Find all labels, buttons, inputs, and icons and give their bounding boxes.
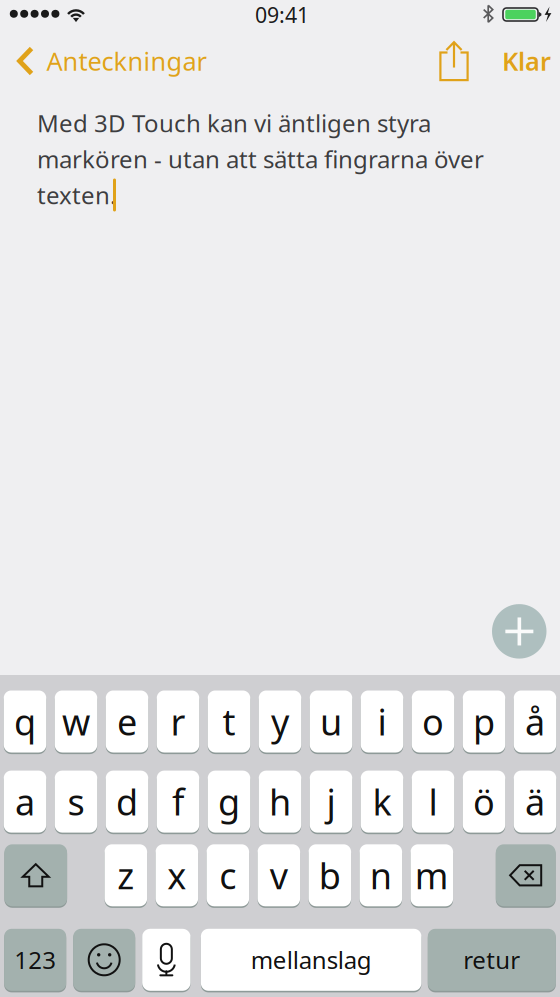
button[interactable]: b	[309, 844, 351, 906]
button[interactable]: retur	[428, 929, 556, 991]
staticText: k	[372, 778, 391, 825]
button[interactable]: mellanslag	[201, 929, 421, 991]
button[interactable]: s	[55, 771, 97, 833]
staticText: h	[269, 778, 291, 825]
staticText: g	[218, 778, 240, 825]
staticText: å	[525, 698, 545, 745]
button[interactable]: p	[463, 690, 505, 752]
button[interactable]: Anteckningar	[16, 27, 216, 83]
staticText: x	[167, 851, 186, 899]
staticText: p	[473, 698, 495, 745]
staticText: z	[117, 851, 134, 899]
button[interactable]: Share	[428, 27, 480, 83]
staticText: s	[67, 778, 84, 825]
button[interactable]: z	[105, 844, 147, 906]
button[interactable]: t	[208, 690, 250, 752]
staticText: b	[319, 851, 341, 899]
button[interactable]: ä	[514, 771, 556, 833]
staticText: o	[422, 698, 444, 745]
button[interactable]: g	[208, 771, 250, 833]
staticText: a	[15, 778, 35, 825]
button[interactable]: y	[259, 690, 301, 752]
staticText: retur	[463, 944, 520, 976]
button[interactable]: l	[412, 771, 454, 833]
staticText: j	[326, 778, 335, 825]
button[interactable]: j	[310, 771, 352, 833]
staticText: q	[14, 698, 36, 745]
button[interactable]: v	[258, 844, 300, 906]
button[interactable]: d	[106, 771, 148, 833]
staticText: u	[320, 698, 342, 745]
button[interactable]: Add	[492, 604, 546, 659]
staticText: Anteckningar	[46, 44, 206, 78]
button[interactable]: i	[361, 690, 403, 752]
staticText: c	[219, 851, 236, 899]
button[interactable]: a	[4, 771, 46, 833]
button[interactable]: x	[156, 844, 198, 906]
button[interactable]: m	[411, 844, 453, 906]
button[interactable]: n	[360, 844, 402, 906]
button[interactable]: k	[361, 771, 403, 833]
staticText: t	[222, 698, 235, 745]
staticText: texten.	[37, 179, 116, 211]
button[interactable]: ö	[463, 771, 505, 833]
staticText: v	[270, 851, 288, 899]
staticText: w	[62, 698, 90, 745]
button[interactable]: u	[310, 690, 352, 752]
button[interactable]: 123	[4, 929, 66, 991]
button[interactable]: r	[157, 690, 199, 752]
button[interactable]: c	[207, 844, 249, 906]
button[interactable]: å	[514, 690, 556, 752]
staticText: y	[271, 698, 289, 745]
staticText: d	[116, 778, 138, 825]
staticText: n	[370, 851, 392, 899]
staticText: l	[428, 778, 437, 825]
staticText: i	[377, 698, 386, 745]
staticText: r	[170, 698, 185, 745]
staticText: markören - utan att sätta fingrarna över	[37, 143, 484, 175]
staticText: m	[415, 851, 449, 899]
staticText: Med 3D Touch kan vi äntligen styra	[37, 107, 431, 139]
button[interactable]: Dictate	[142, 929, 190, 991]
button[interactable]: h	[259, 771, 301, 833]
button[interactable]: Emoji	[73, 929, 135, 991]
button[interactable]: Delete	[496, 844, 556, 906]
staticText: ä	[525, 778, 545, 825]
staticText: Klar	[502, 44, 551, 78]
staticText: 09:41	[255, 1, 309, 29]
staticText: ö	[473, 778, 495, 825]
staticText: mellanslag	[251, 944, 372, 976]
button[interactable]: o	[412, 690, 454, 752]
button[interactable]: w	[55, 690, 97, 752]
button[interactable]: q	[4, 690, 46, 752]
staticText: f	[172, 778, 184, 825]
button[interactable]: e	[106, 690, 148, 752]
button[interactable]: Klar	[502, 27, 560, 57]
button[interactable]: Shift	[4, 844, 67, 906]
staticText: e	[117, 698, 137, 745]
button[interactable]: f	[157, 771, 199, 833]
staticText: 123	[14, 944, 56, 976]
